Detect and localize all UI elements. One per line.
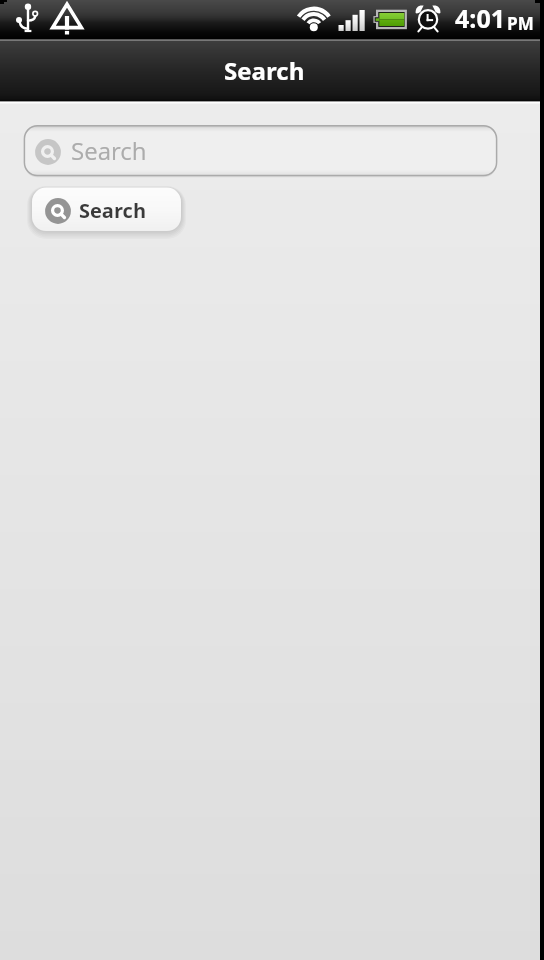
staticText: Search [224,54,305,87]
staticText: 4:01 [455,1,505,35]
button[interactable]: Search [28,186,185,236]
staticText: PM [507,12,534,35]
staticText: Search [71,134,147,167]
button[interactable]: Search [23,125,498,178]
staticText: Search [79,197,147,224]
